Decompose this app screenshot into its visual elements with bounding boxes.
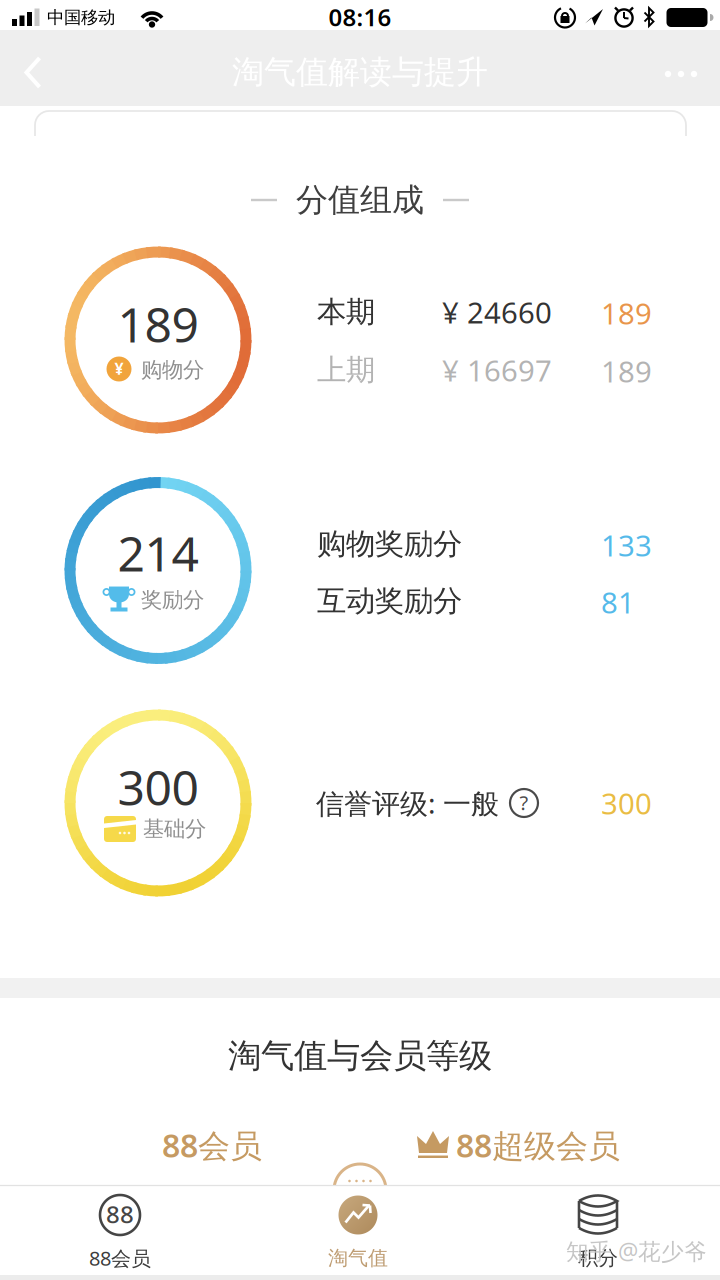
staticText: 81: [601, 582, 635, 621]
staticText: 189: [117, 292, 198, 356]
staticText: ¥ 24660: [442, 292, 552, 331]
staticText: 淘气值: [328, 1246, 388, 1270]
staticText: 信誉评级: 一般: [316, 784, 499, 822]
staticText: 上期: [317, 352, 375, 388]
button[interactable]: 88: [40, 1186, 200, 1274]
staticText: 88会员: [89, 1245, 151, 1271]
staticText: ?: [519, 789, 528, 816]
staticText: 知乎 @花少爷: [566, 1236, 707, 1266]
staticText: 淘气值解读与提升: [232, 52, 488, 92]
staticText: 08:16: [328, 1, 391, 33]
staticText: 88: [106, 1198, 134, 1230]
staticText: ¥: [114, 358, 123, 379]
staticText: 基础分: [143, 816, 206, 842]
staticText: 分值组成: [296, 180, 424, 220]
staticText: 300: [601, 783, 652, 822]
staticText: 214: [117, 521, 198, 585]
button[interactable]: 积分: [518, 1186, 678, 1274]
staticText: 互动奖励分: [317, 583, 462, 619]
staticText: 300: [117, 755, 198, 819]
staticText: 189: [601, 351, 652, 390]
staticText: 88超级会员: [456, 1124, 620, 1166]
staticText: 淘气值与会员等级: [228, 1035, 492, 1076]
staticText: 积分: [578, 1246, 618, 1270]
staticText: 购物分: [141, 357, 204, 383]
staticText: 189: [601, 293, 652, 332]
staticText: ¥ 16697: [442, 350, 552, 389]
staticText: 133: [601, 525, 652, 564]
button[interactable]: [5, 44, 61, 101]
staticText: 本期: [317, 294, 375, 330]
button[interactable]: ?: [504, 783, 544, 823]
button[interactable]: 淘气值: [278, 1186, 438, 1274]
staticText: 中国移动: [47, 7, 115, 28]
staticText: 88会员: [162, 1124, 262, 1166]
staticText: 购物奖励分: [317, 526, 462, 562]
staticText: 奖励分: [141, 587, 204, 613]
